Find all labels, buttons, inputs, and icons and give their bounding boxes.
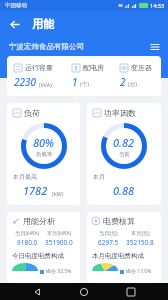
staticText: 负荷: [24, 108, 40, 118]
staticText: 功率因数: [104, 108, 136, 118]
staticText: (kW): [52, 190, 64, 197]
staticText: 本月(元): [131, 229, 150, 236]
staticText: (kVA): [39, 81, 52, 88]
staticText: 当前: [119, 151, 130, 158]
staticText: 配电房: [83, 63, 104, 72]
staticText: 中国移动: [5, 2, 27, 9]
staticText: 用能: [32, 17, 54, 31]
button[interactable]: 负荷: [7, 103, 80, 205]
staticText: 当日(元): [99, 229, 118, 236]
staticText: 用能分析: [23, 216, 55, 226]
button[interactable]: 返回: [6, 16, 22, 32]
staticText: 本月(kWh): [47, 229, 72, 236]
button[interactable]: 返回: [27, 283, 47, 300]
staticText: 本月最高: [13, 173, 37, 181]
staticText: 0.82: [113, 135, 135, 150]
staticText: 本月电度电费构成: [92, 252, 144, 260]
staticText: 负载率: [36, 151, 53, 158]
staticText: 351900.0: [45, 238, 73, 247]
button[interactable]: 功率因数: [87, 103, 161, 205]
staticText: 运行容量: [25, 63, 53, 72]
staticText: 14:53: [150, 2, 165, 9]
staticText: 1782: [23, 183, 48, 198]
staticText: 80%: [33, 135, 55, 150]
button[interactable]: 宁波宏炜食品有限公司: [0, 37, 168, 56]
staticText: (个): [80, 80, 89, 88]
button[interactable]: 用能分析: [7, 212, 80, 283]
staticText: 峰谷 32.5%: [46, 268, 72, 275]
staticText: 2: [120, 75, 126, 89]
staticText: 变压器: [131, 63, 152, 72]
staticText: 0.88: [113, 183, 135, 198]
staticText: 当日(kWh): [15, 229, 40, 236]
button[interactable]: 运行容量: [7, 56, 161, 96]
button[interactable]: 菜单: [148, 40, 161, 53]
staticText: 本月: [93, 173, 105, 181]
staticText: (台): [128, 80, 137, 88]
staticText: 今日电度电费构成: [12, 252, 64, 260]
staticText: 352150.8: [126, 238, 154, 247]
button[interactable]: 最近任务: [121, 283, 141, 300]
button[interactable]: 电费核算: [87, 212, 161, 283]
staticText: 6297.5: [98, 238, 119, 247]
staticText: 电费核算: [103, 216, 135, 226]
staticText: 1: [72, 75, 78, 89]
staticText: 2230: [14, 75, 37, 89]
button[interactable]: 主页: [74, 283, 94, 300]
staticText: 宁波宏炜食品有限公司: [9, 42, 84, 51]
staticText: 峰谷 17.0%: [126, 268, 152, 275]
staticText: 9180.0: [17, 238, 38, 247]
